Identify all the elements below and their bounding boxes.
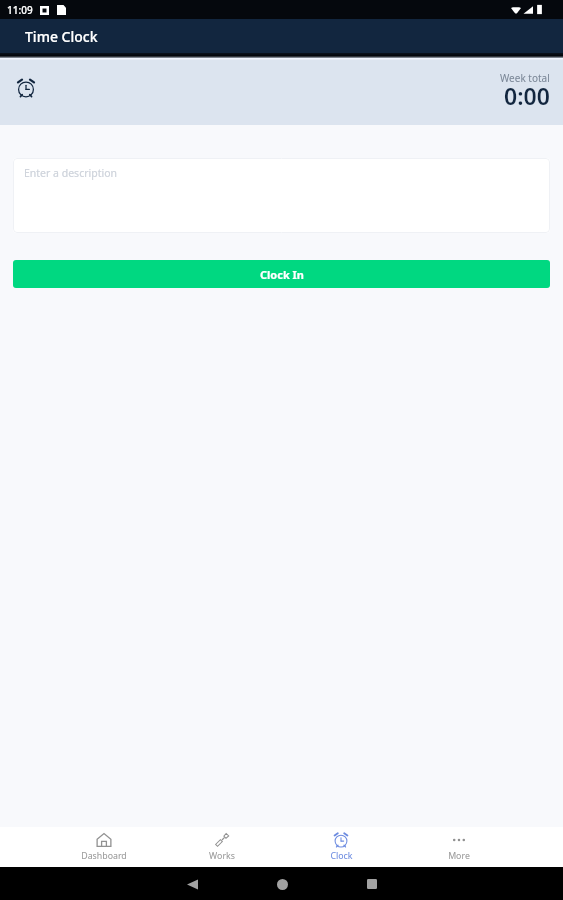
staticText: Time Clock xyxy=(25,27,98,46)
button[interactable]: Back xyxy=(176,868,208,900)
button[interactable]: Enter a description xyxy=(13,158,550,233)
staticText: Dashboard xyxy=(81,850,127,862)
staticText: Works xyxy=(209,850,235,862)
button[interactable]: Clock xyxy=(282,827,400,867)
staticText: 0:00 xyxy=(504,80,550,111)
staticText: 11:09 xyxy=(7,3,33,17)
staticText: Clock In xyxy=(260,267,304,282)
staticText: Enter a description xyxy=(24,166,118,180)
button[interactable]: Recents xyxy=(356,868,388,900)
staticText: More xyxy=(448,850,470,862)
staticText: Week total xyxy=(500,71,550,85)
button[interactable]: Works xyxy=(163,827,281,867)
button[interactable]: Dashboard xyxy=(45,827,163,867)
staticText: Clock xyxy=(330,850,353,862)
button[interactable]: Home xyxy=(266,868,298,900)
button[interactable]: Timer xyxy=(16,78,36,98)
button[interactable]: Clock In xyxy=(13,260,550,288)
button[interactable]: More xyxy=(400,827,518,867)
